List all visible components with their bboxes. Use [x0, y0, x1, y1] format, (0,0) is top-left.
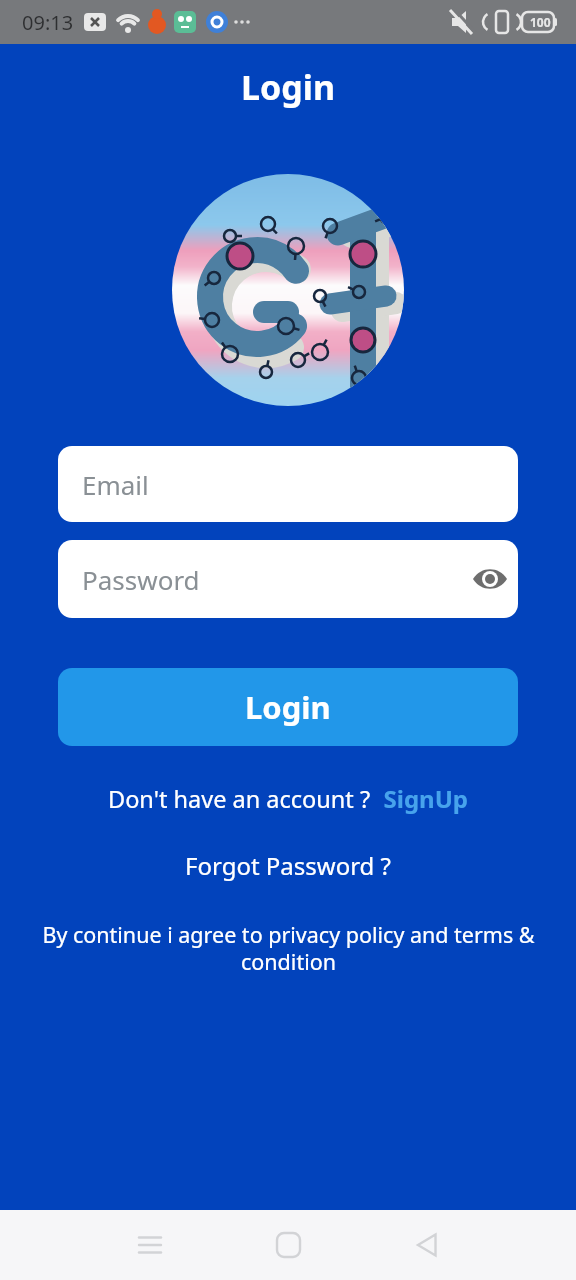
- staticText: Password: [82, 562, 200, 597]
- staticText: Login: [241, 64, 336, 110]
- staticText: Don't have an account ?: [108, 783, 371, 815]
- button[interactable]: Email: [58, 446, 518, 522]
- button[interactable]: Password: [58, 540, 518, 618]
- button[interactable]: Forgot Password ?: [185, 849, 392, 882]
- button[interactable]: [243, 1210, 333, 1280]
- button[interactable]: [105, 1210, 195, 1280]
- staticText: Email: [82, 467, 149, 502]
- button[interactable]: [381, 1210, 471, 1280]
- staticText: 100: [530, 14, 551, 30]
- staticText: 09:13: [22, 9, 74, 36]
- staticText: By continue i agree to privacy policy an…: [42, 920, 535, 976]
- staticText: Login: [245, 686, 331, 728]
- button[interactable]: Login: [58, 668, 518, 746]
- button[interactable]: SignUp: [371, 782, 468, 815]
